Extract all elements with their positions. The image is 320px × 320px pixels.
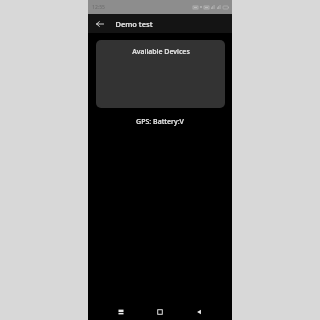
staticText: 12:55: [92, 4, 105, 11]
button[interactable]: Recents: [102, 303, 140, 320]
staticText: GPS: Battery:V: [136, 117, 184, 127]
button[interactable]: Back: [179, 303, 218, 320]
button[interactable]: Back: [94, 18, 106, 30]
staticText: Available Devices: [132, 47, 190, 57]
button[interactable]: Available Devices: [96, 40, 225, 108]
staticText: Demo test: [115, 19, 153, 29]
button[interactable]: Home: [140, 303, 179, 320]
